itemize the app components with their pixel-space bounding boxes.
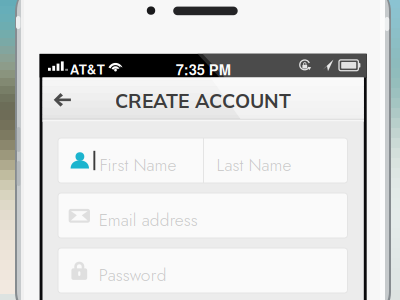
button[interactable]: First Name: [58, 138, 203, 183]
button[interactable]: Back: [41, 79, 83, 121]
button[interactable]: Email address: [58, 193, 347, 238]
staticText: Password: [99, 262, 167, 287]
button[interactable]: Last Name: [204, 138, 347, 183]
staticText: Last Name: [216, 152, 291, 177]
staticText: 7:35 PM: [176, 59, 231, 80]
staticText: Email address: [99, 207, 198, 232]
button[interactable]: Password: [58, 248, 347, 293]
staticText: CREATE ACCOUNT: [115, 88, 291, 113]
staticText: AT&T: [70, 59, 105, 78]
staticText: First Name: [100, 152, 177, 177]
